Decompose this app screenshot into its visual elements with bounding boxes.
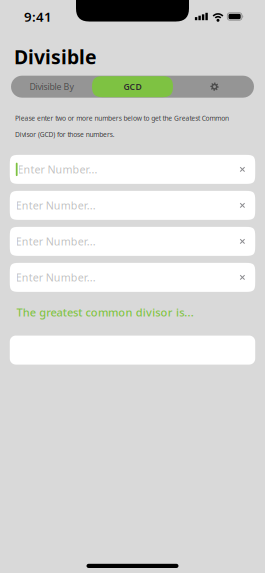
staticText: The greatest common divisor is... — [16, 305, 193, 320]
staticText: Enter Number... — [16, 234, 96, 248]
button[interactable]: Clear — [235, 234, 250, 249]
button[interactable]: Divisible By — [11, 76, 92, 98]
button[interactable]: Settings — [173, 76, 254, 98]
staticText: Please enter two or more numbers below t… — [15, 114, 229, 123]
staticText: Enter Number... — [16, 270, 96, 284]
staticText: Divisible — [14, 44, 97, 70]
button[interactable]: Enter Number... — [10, 263, 255, 292]
button[interactable]: Clear — [235, 270, 250, 285]
button[interactable]: GCD — [92, 76, 173, 97]
staticText: Divisible By — [29, 81, 73, 92]
button[interactable]: Enter Number... — [10, 191, 255, 220]
staticText: Enter Number... — [16, 198, 96, 212]
button[interactable]: Clear — [235, 162, 250, 177]
staticText: Enter Number... — [18, 162, 98, 176]
staticText: Divisor (GCD) for those numbers. — [15, 130, 115, 139]
staticText: 9:41 — [24, 8, 52, 25]
button[interactable]: Enter Number... — [10, 155, 255, 184]
button[interactable]: Clear — [235, 198, 250, 213]
button[interactable]: Enter Number... — [10, 227, 255, 256]
staticText: GCD — [123, 81, 141, 92]
